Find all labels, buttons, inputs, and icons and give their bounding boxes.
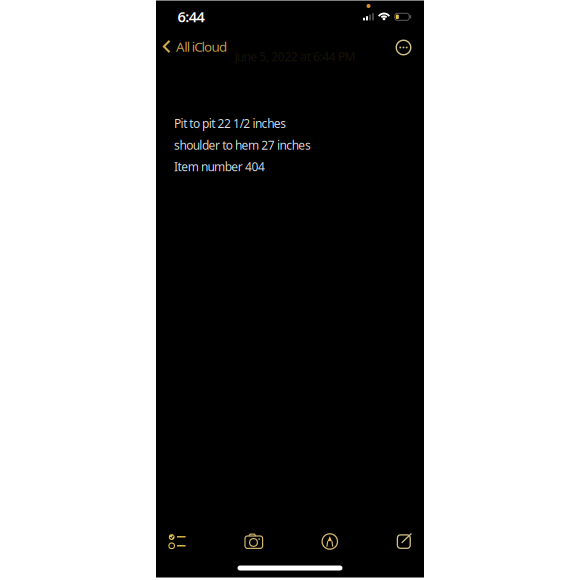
button[interactable]: More [393,37,413,57]
button[interactable]: Markup [315,526,345,556]
staticText: 6:44 [177,7,204,26]
staticText: All iCloud [176,38,227,55]
staticText: Pit to pit 22 1/2 inches [174,115,286,131]
button[interactable]: Camera [239,526,269,556]
staticText: Item number 404 [174,158,265,174]
button[interactable]: All iCloud [162,35,402,57]
button[interactable]: Checklist [162,526,192,556]
staticText: June 5, 2022 at 6:44 PM [234,48,356,64]
staticText: shoulder to hem 27 inches [174,137,311,153]
button[interactable]: New note [389,526,419,556]
